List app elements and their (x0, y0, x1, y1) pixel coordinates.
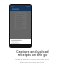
staticText: Snap a photo of your receipt and we'll d… (15, 58, 49, 64)
other: Receipt camera preview (10, 5, 31, 44)
staticText: Capture and upload receipts on the go (16, 49, 49, 57)
